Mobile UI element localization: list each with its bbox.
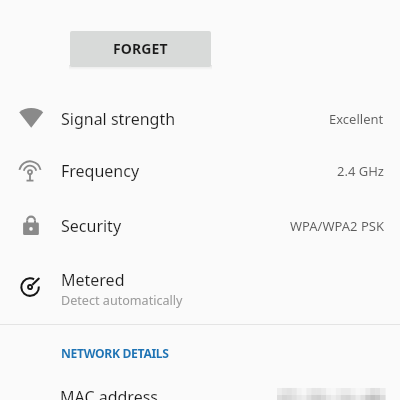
- staticText: Security: [61, 215, 122, 237]
- staticText: FORGET: [113, 39, 168, 58]
- staticText: MAC address: [60, 386, 158, 400]
- staticText: WPA/WPA2 PSK: [290, 217, 384, 235]
- staticText: NETWORK DETAILS: [61, 345, 169, 362]
- button[interactable]: Security: [0, 206, 400, 260]
- staticText: Frequency: [61, 160, 140, 182]
- button[interactable]: MAC address: [0, 372, 400, 400]
- button[interactable]: Signal strength: [0, 99, 400, 153]
- staticText: Signal strength: [61, 108, 176, 130]
- button[interactable]: FORGET: [70, 31, 211, 67]
- staticText: Metered: [61, 269, 125, 291]
- button[interactable]: Metered: [0, 260, 400, 314]
- staticText: Detect automatically: [61, 292, 183, 309]
- button[interactable]: Frequency: [0, 151, 400, 205]
- staticText: Excellent: [329, 110, 384, 128]
- staticText: 2.4 GHz: [337, 162, 384, 180]
